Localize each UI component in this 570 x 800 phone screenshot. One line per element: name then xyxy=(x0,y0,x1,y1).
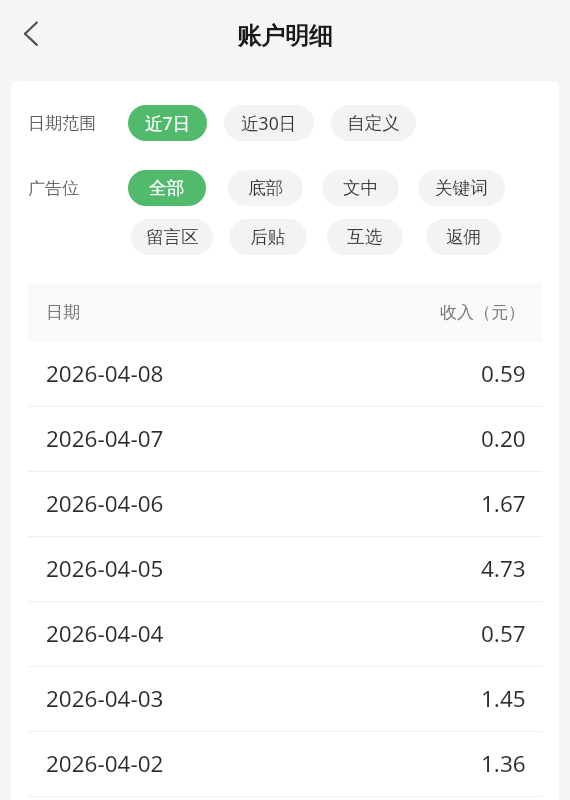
staticText: 账户明细 xyxy=(237,21,333,51)
staticText: 2026-04-03 xyxy=(46,683,164,714)
staticText: 文中 xyxy=(343,177,379,199)
staticText: 2026-04-07 xyxy=(46,423,164,454)
staticText: 互选 xyxy=(347,226,383,248)
button[interactable]: 近30日 xyxy=(224,105,314,141)
staticText: 2026-04-08 xyxy=(46,358,164,389)
staticText: 2026-04-05 xyxy=(46,553,164,584)
staticText: 关键词 xyxy=(435,177,488,199)
staticText: 收入（元） xyxy=(440,302,525,323)
staticText: 2026-04-04 xyxy=(46,618,164,649)
staticText: 后贴 xyxy=(250,226,286,248)
staticText: 日期范围 xyxy=(28,113,96,134)
button[interactable]: 关键词 xyxy=(418,170,505,206)
button[interactable]: 2026-04-05 xyxy=(11,537,559,602)
staticText: 1.45 xyxy=(481,683,526,714)
staticText: 1.36 xyxy=(481,748,526,779)
button[interactable]: 近7日 xyxy=(128,105,207,141)
button[interactable]: 2026-04-03 xyxy=(11,667,559,732)
staticText: 2026-04-06 xyxy=(46,488,164,519)
button[interactable]: 2026-04-02 xyxy=(11,732,559,797)
staticText: 返佣 xyxy=(446,226,482,248)
button[interactable]: 底部 xyxy=(228,170,303,206)
button[interactable]: 后贴 xyxy=(229,219,307,255)
button[interactable]: 全部 xyxy=(128,170,206,206)
button[interactable]: 返佣 xyxy=(426,219,501,255)
staticText: 近7日 xyxy=(145,111,191,135)
staticText: 0.59 xyxy=(481,358,526,389)
staticText: 留言区 xyxy=(146,226,199,248)
button[interactable]: 留言区 xyxy=(131,219,213,255)
staticText: 日期 xyxy=(46,302,80,323)
staticText: 近30日 xyxy=(241,111,297,135)
staticText: 0.57 xyxy=(481,618,526,649)
staticText: 4.73 xyxy=(481,553,526,584)
button[interactable]: 互选 xyxy=(327,219,403,255)
button[interactable]: 文中 xyxy=(322,170,399,206)
button[interactable]: Back xyxy=(8,12,52,56)
staticText: 广告位 xyxy=(28,178,79,199)
staticText: 底部 xyxy=(248,177,284,199)
button[interactable]: 2026-04-06 xyxy=(11,472,559,537)
staticText: 1.67 xyxy=(481,488,526,519)
button[interactable]: 自定义 xyxy=(331,105,416,141)
button[interactable]: 2026-04-04 xyxy=(11,602,559,667)
staticText: 0.20 xyxy=(481,423,526,454)
button[interactable]: 2026-04-07 xyxy=(11,407,559,472)
staticText: 全部 xyxy=(149,177,185,199)
button[interactable]: 2026-04-08 xyxy=(11,342,559,407)
staticText: 2026-04-02 xyxy=(46,748,164,779)
staticText: 自定义 xyxy=(347,112,400,134)
